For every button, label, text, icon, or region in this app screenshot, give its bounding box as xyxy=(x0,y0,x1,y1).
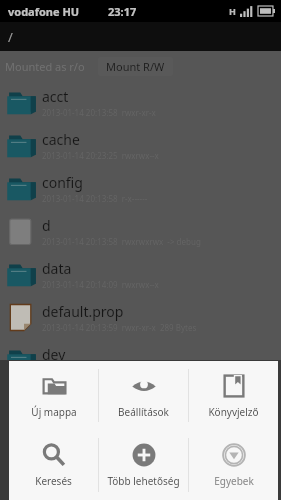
button[interactable]: Mount R/W xyxy=(98,57,173,76)
button[interactable]: Egyebek xyxy=(189,430,278,500)
staticText: Több lehetőség xyxy=(107,474,180,488)
button[interactable]: default.prop xyxy=(0,296,281,339)
button[interactable]: acct xyxy=(0,81,281,124)
button[interactable]: data xyxy=(0,253,281,296)
button[interactable]: Új mappa xyxy=(9,361,98,430)
button[interactable]: Keresés xyxy=(9,430,98,500)
staticText: Új mappa xyxy=(31,405,77,419)
staticText: d xyxy=(42,216,51,235)
button[interactable]: d xyxy=(0,210,281,253)
button[interactable]: cache xyxy=(0,124,281,167)
staticText: 2013-01-14 20:23:25 rwxrwx--x xyxy=(42,150,159,161)
staticText: config xyxy=(42,173,83,192)
staticText: Mount R/W xyxy=(106,59,165,74)
staticText: 2013-01-14 20:13:58 rwxr-xr-x xyxy=(42,107,156,118)
staticText: Mounted as r/o xyxy=(5,59,85,74)
staticText: dev xyxy=(42,345,66,364)
staticText: 2013-01-14 20:13:59 rwxr-xr-x 289 Bytes xyxy=(42,322,197,333)
staticText: 2013-01-14 20:14:09 rwxrwx--x xyxy=(42,279,159,290)
staticText: 2013-01-14 20:13:58 r-x------ xyxy=(42,193,148,204)
staticText: 23:17 xyxy=(108,4,137,19)
staticText: cache xyxy=(42,130,80,149)
staticText: acct xyxy=(42,87,69,106)
staticText: default.prop xyxy=(42,302,124,321)
staticText: H xyxy=(229,5,236,17)
button[interactable]: Több lehetőség xyxy=(99,430,188,500)
staticText: data xyxy=(42,259,72,278)
staticText: 2013-01-14 20:13:58 rwxrwxrwx -> debug xyxy=(42,236,201,247)
staticText: Beállítások xyxy=(118,405,169,419)
button[interactable]: Beállítások xyxy=(99,361,188,430)
staticText: Egyebek xyxy=(214,474,254,488)
staticText: vodafone HU xyxy=(8,4,80,19)
button[interactable]: config xyxy=(0,167,281,210)
staticText: Könyvjelző xyxy=(208,405,259,419)
staticText: Keresés xyxy=(35,474,72,488)
button[interactable]: dev xyxy=(0,339,281,382)
button[interactable]: Könyvjelző xyxy=(189,361,278,430)
staticText: / xyxy=(8,28,13,46)
